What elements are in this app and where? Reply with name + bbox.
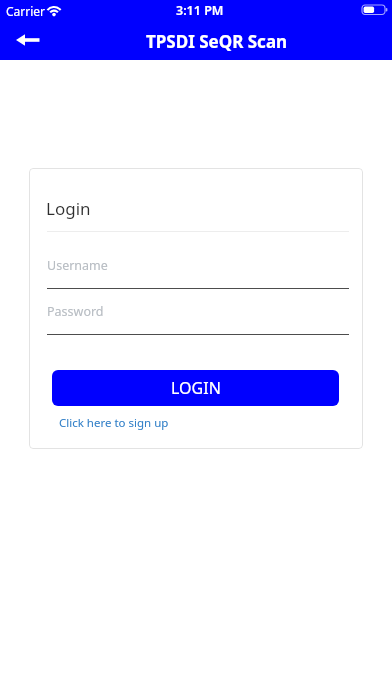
staticText: Click here to sign up	[59, 415, 169, 431]
staticText: Username	[47, 257, 108, 274]
button[interactable]: Password	[47, 294, 349, 335]
staticText: 3:11 PM	[176, 2, 224, 19]
button[interactable]: Click here to sign up	[59, 415, 169, 431]
button[interactable]: LOGIN	[52, 370, 339, 406]
button[interactable]: Username	[47, 248, 349, 289]
button[interactable]	[8, 26, 48, 54]
staticText: LOGIN	[171, 377, 221, 399]
staticText: Carrier	[6, 3, 46, 19]
staticText: Password	[47, 303, 104, 320]
staticText: TPSDI SeQR Scan	[146, 30, 288, 53]
staticText: Login	[46, 197, 91, 220]
